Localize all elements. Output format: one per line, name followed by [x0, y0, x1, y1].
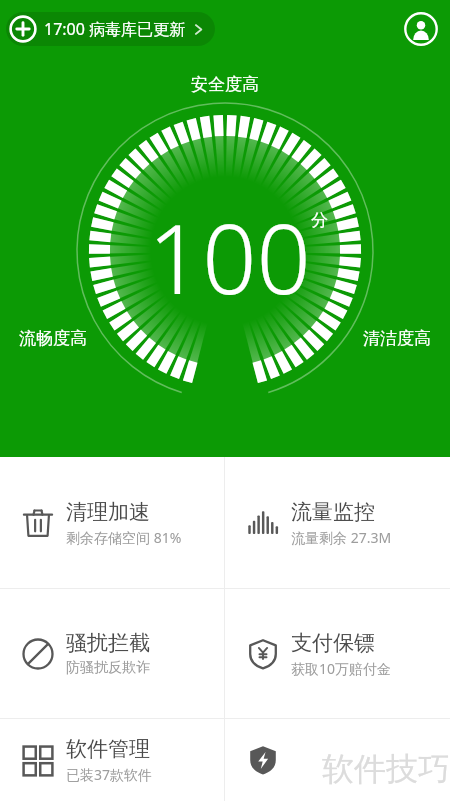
button[interactable]: Data monitor	[225, 457, 450, 588]
staticText: 防骚扰反欺诈	[66, 659, 150, 677]
staticText: 流量剩余 27.3M	[291, 528, 392, 547]
button[interactable]: Payment guard	[225, 589, 450, 718]
other: Block harassment	[22, 638, 54, 670]
button[interactable]: Security tips	[225, 719, 450, 801]
staticText: 骚扰拦截	[66, 630, 150, 656]
staticText: 清洁度高	[363, 328, 431, 349]
staticText: 流畅度高	[19, 328, 87, 349]
staticText: 安全度高	[191, 74, 259, 95]
button[interactable]: Clean and speed up	[0, 457, 224, 588]
button[interactable]: 17:00 病毒库已更新	[6, 12, 215, 46]
other: Clean and speed up	[22, 507, 54, 539]
other: Payment guard	[247, 638, 279, 670]
staticText: 获取10万赔付金	[291, 659, 392, 678]
other: Data monitor	[247, 507, 279, 539]
button[interactable]: Block harassment	[0, 589, 224, 718]
button[interactable]: Account	[400, 8, 442, 50]
other: App manager	[22, 744, 54, 776]
staticText: 软件技巧	[322, 749, 450, 789]
staticText: 100	[148, 192, 311, 321]
staticText: 支付保镖	[291, 630, 375, 656]
staticText: 软件管理	[66, 736, 150, 762]
staticText: 17:00 病毒库已更新	[44, 18, 186, 40]
staticText: 已装37款软件	[66, 765, 153, 784]
staticText: 流量监控	[291, 499, 375, 525]
staticText: 分	[311, 210, 328, 231]
staticText: 清理加速	[66, 499, 150, 525]
staticText: 剩余存储空间 81%	[66, 528, 182, 547]
other: Security tips	[247, 744, 279, 776]
button[interactable]: App manager	[0, 719, 224, 801]
